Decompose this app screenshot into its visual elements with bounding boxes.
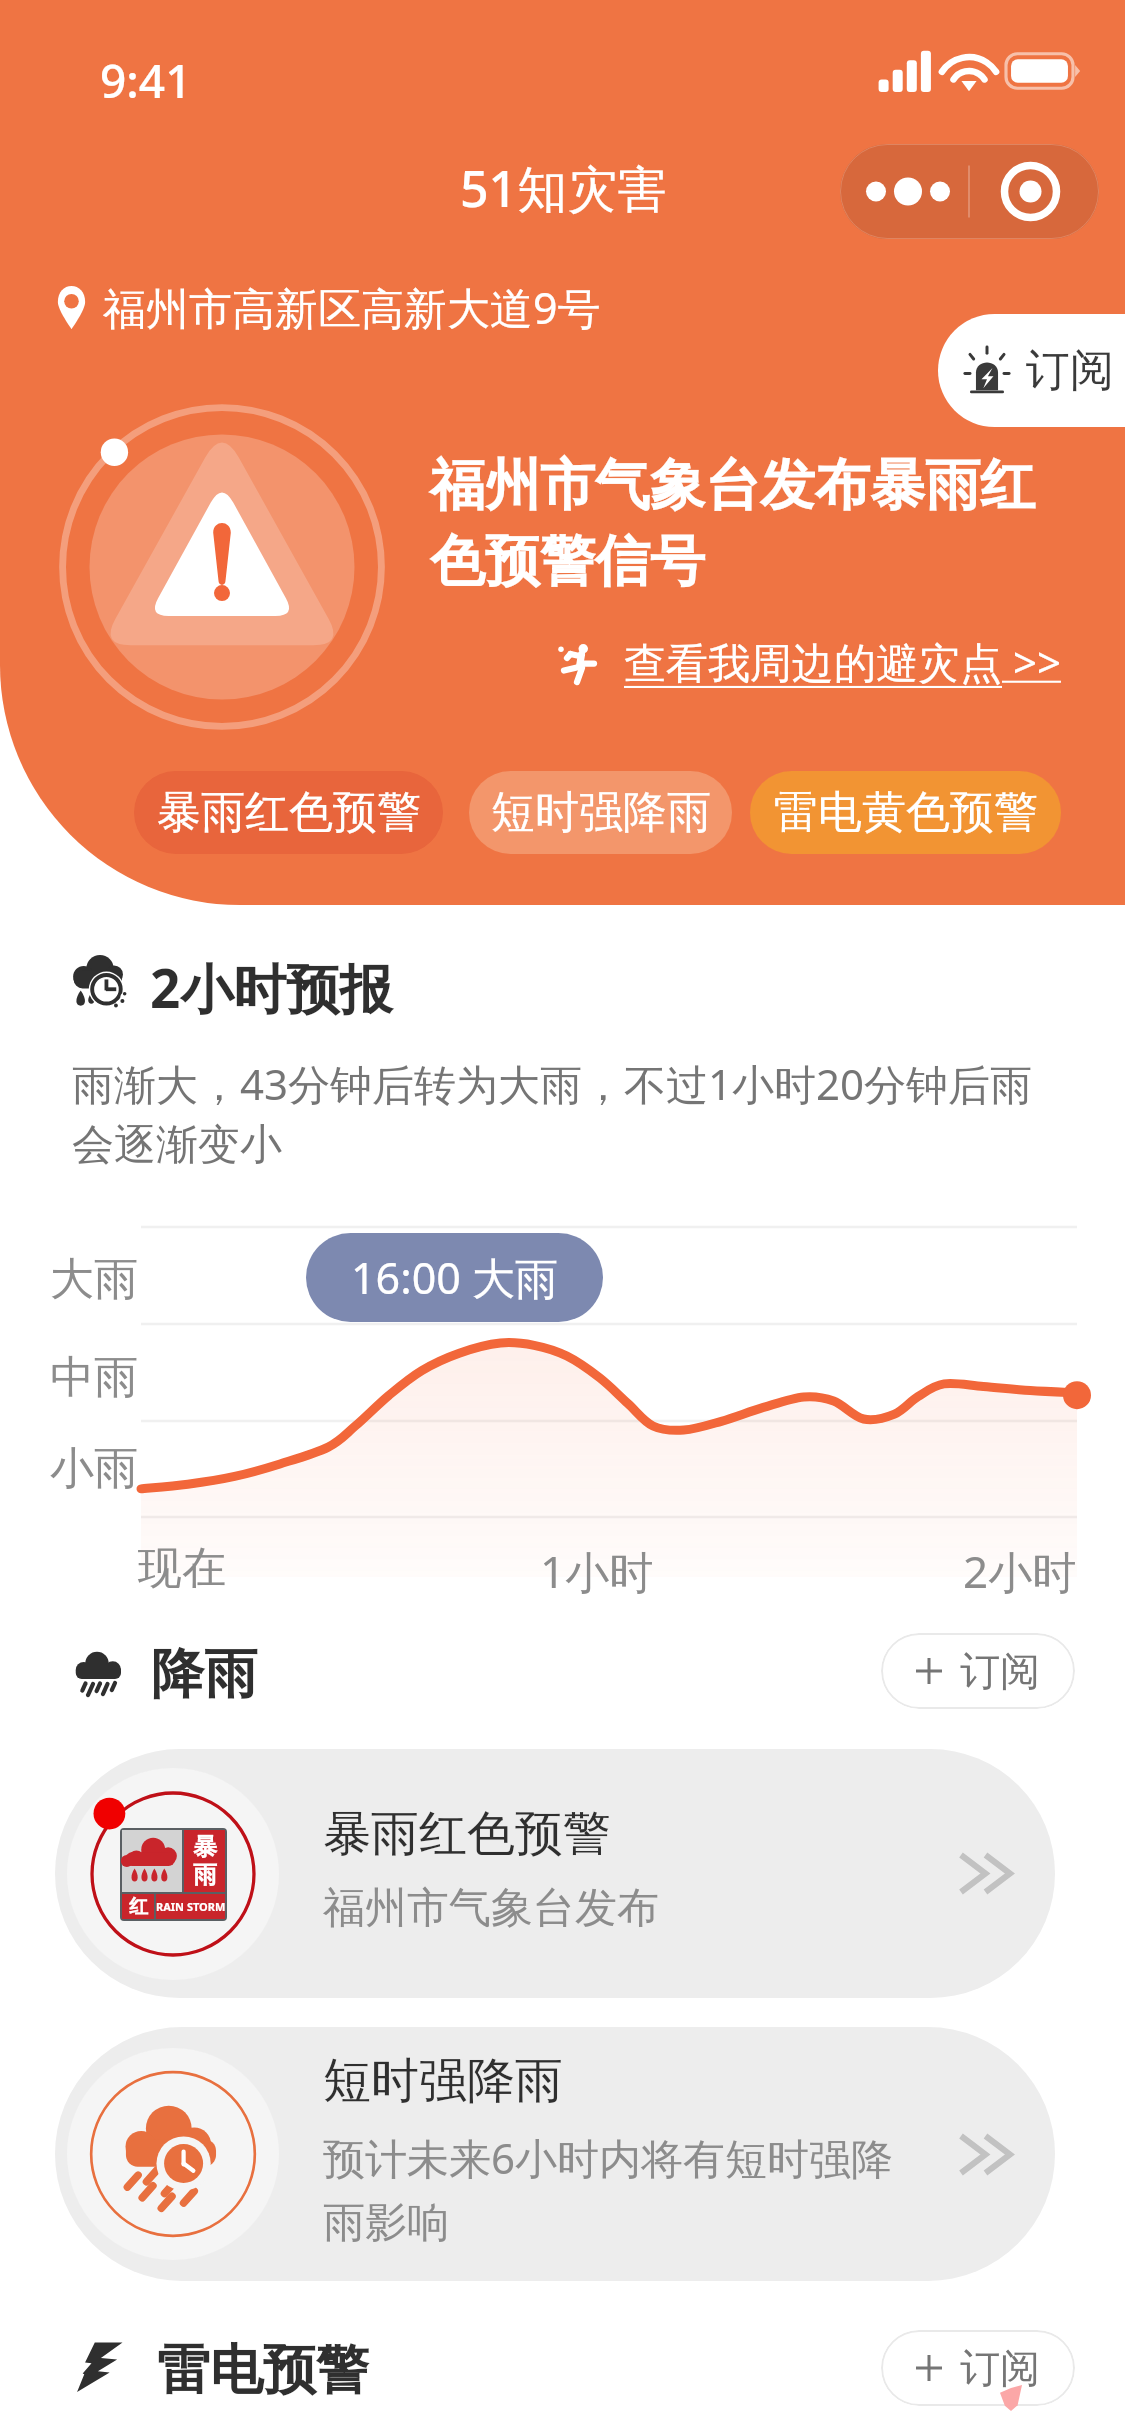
staticText: 小雨 <box>50 1441 138 1496</box>
staticText: 1小时 <box>540 1541 654 1601</box>
button[interactable]: 订阅 <box>938 314 1125 427</box>
button[interactable]: 暴雨红色预警 <box>134 771 443 854</box>
staticText: 2小时 <box>963 1541 1077 1601</box>
staticText: 订阅 <box>1026 343 1114 398</box>
staticText: 9:41 <box>100 49 192 112</box>
staticText: 短时强降雨 <box>323 2051 563 2111</box>
staticText: 2小时预报 <box>150 951 393 1023</box>
button[interactable]: 短时强降雨 <box>55 2027 1055 2281</box>
button[interactable]: 订阅 <box>881 2330 1075 2406</box>
staticText: 51知灾害 <box>460 154 668 222</box>
staticText: 预计未来6小时内将有短时强降雨影响 <box>323 2129 905 2250</box>
staticText: 暴 雨 <box>193 1832 217 1890</box>
staticText: 现在 <box>138 1541 226 1596</box>
staticText: 降雨 <box>151 1641 257 1708</box>
staticText: 订阅 <box>960 1646 1040 1696</box>
staticText: 雷电黄色预警 <box>774 785 1038 840</box>
staticText: 短时强降雨 <box>491 785 711 840</box>
button[interactable]: 查看我周边的避灾点 >> <box>556 633 1061 690</box>
staticText: 福州市高新区高新大道9号 <box>103 278 601 337</box>
staticText: 雨渐大，43分钟后转为大雨，不过1小时20分钟后雨会逐渐变小 <box>72 1055 1042 1172</box>
staticText: 订阅 <box>960 2343 1040 2393</box>
button[interactable]: More options and close mini program <box>840 144 1099 239</box>
staticText: 16:00 大雨 <box>351 1248 559 1307</box>
button[interactable]: 订阅 <box>881 1633 1075 1709</box>
staticText: 大雨 <box>50 1252 138 1307</box>
staticText: 暴雨红色预警 <box>157 785 421 840</box>
staticText: 福州市气象台发布 <box>323 1882 659 1935</box>
staticText: 查看我周边的避灾点 >> <box>624 633 1061 690</box>
button[interactable]: 短时强降雨 <box>469 771 732 854</box>
staticText: RAIN STORM <box>156 1899 225 1914</box>
button[interactable]: 雷电黄色预警 <box>750 771 1061 854</box>
staticText: 雷电预警 <box>157 2337 369 2404</box>
button[interactable]: 福州市高新区高新大道9号 <box>56 278 601 337</box>
button[interactable]: 暴 雨 <box>55 1749 1055 1998</box>
staticText: 暴雨红色预警 <box>323 1804 611 1864</box>
staticText: 中雨 <box>50 1350 138 1405</box>
staticText: 福州市气象台发布暴雨红色预警信号 <box>430 451 1042 597</box>
staticText: 红 <box>129 1895 148 1919</box>
